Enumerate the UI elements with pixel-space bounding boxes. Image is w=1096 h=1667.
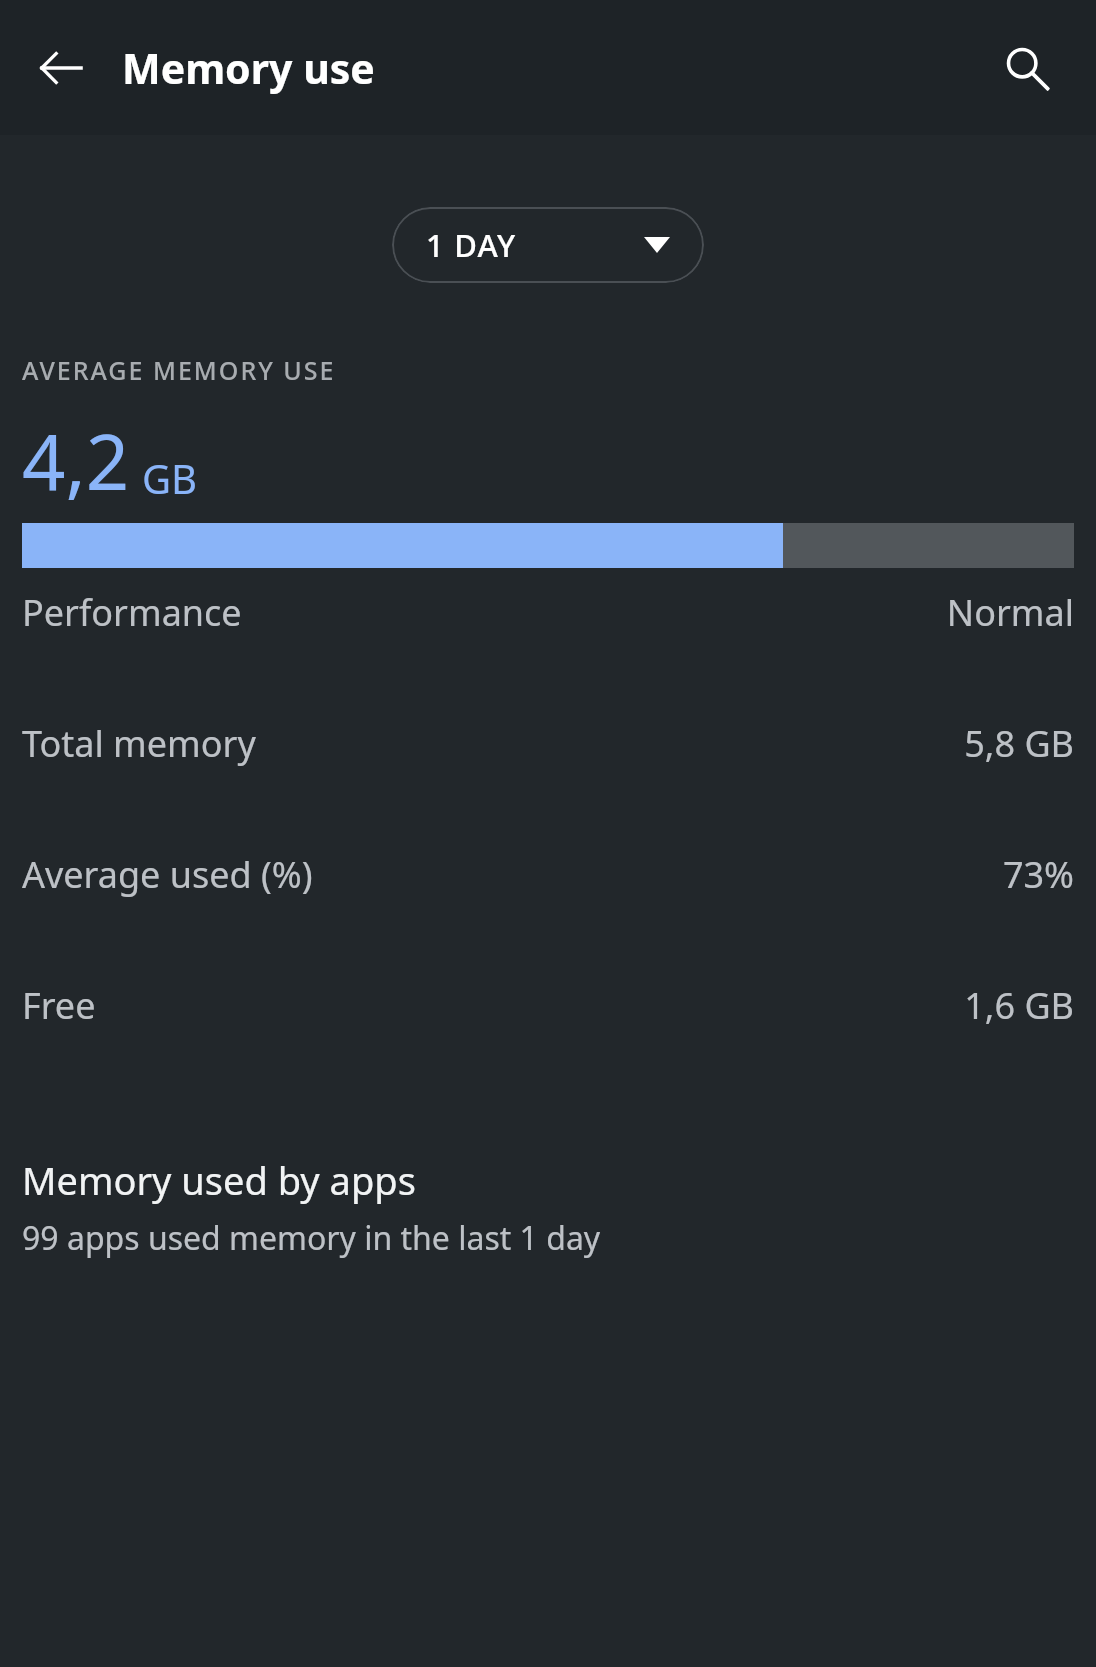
button[interactable]: Memory used by apps xyxy=(22,1154,1074,1260)
staticText: Average used (%) xyxy=(22,850,313,899)
staticText: Memory use xyxy=(122,40,375,96)
button[interactable]: Search xyxy=(996,37,1058,99)
staticText: GB xyxy=(142,451,198,505)
staticText: Free xyxy=(22,981,96,1030)
staticText: AVERAGE MEMORY USE xyxy=(22,353,336,387)
staticText: Normal xyxy=(946,588,1074,637)
staticText: Total memory xyxy=(22,719,256,768)
staticText: 99 apps used memory in the last 1 day xyxy=(22,1216,601,1260)
button[interactable]: Total memory xyxy=(22,715,1074,772)
button[interactable]: Performance xyxy=(22,584,1074,641)
button[interactable]: 1 DAY xyxy=(392,207,704,283)
staticText: Memory used by apps xyxy=(22,1154,416,1206)
staticText: 1,6 GB xyxy=(964,981,1074,1030)
staticText: 1 DAY xyxy=(426,224,517,266)
staticText: 5,8 GB xyxy=(964,719,1074,768)
button[interactable]: Back xyxy=(30,37,92,99)
staticText: 73% xyxy=(1002,850,1074,899)
button[interactable]: Free xyxy=(22,977,1074,1034)
staticText: 4,2 xyxy=(22,409,130,513)
button[interactable]: Average used (%) xyxy=(22,846,1074,903)
staticText: Performance xyxy=(22,588,242,637)
